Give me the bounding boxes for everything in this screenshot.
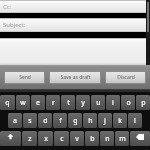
staticText: Discard [117,74,135,81]
button[interactable]: d [38,113,52,128]
staticText: z [28,134,32,144]
button[interactable]: r [46,95,60,110]
staticText: c [60,134,64,144]
staticText: a [13,116,17,126]
button[interactable]: Subject: [0,18,150,32]
button[interactable] [0,38,150,65]
staticText: p [141,98,146,108]
button[interactable]: a [8,113,22,128]
button[interactable]: f [53,113,67,128]
button[interactable]: c [54,131,69,146]
button[interactable]: Backspace [130,131,150,146]
staticText: i [112,98,114,108]
staticText: Cc: [3,3,12,11]
button[interactable]: w [16,95,30,110]
button[interactable]: k [113,113,127,128]
button[interactable]: q [0,95,15,110]
button[interactable]: g [68,113,82,128]
staticText: m [119,134,126,144]
staticText: x [44,134,48,144]
button[interactable]: h [83,113,97,128]
staticText: f [59,116,62,126]
button[interactable]: z [22,131,37,146]
staticText: k [118,116,122,126]
button[interactable]: l [128,113,142,128]
button[interactable]: u [91,95,105,110]
button[interactable]: Send [5,72,44,83]
staticText: w [20,98,26,108]
staticText: q [5,98,10,108]
staticText: o [126,98,131,108]
staticText: s [28,116,32,126]
button[interactable]: s [23,113,37,128]
staticText: b [90,134,95,144]
button[interactable]: o [121,95,135,110]
staticText: y [81,98,85,108]
button[interactable]: e [31,95,45,110]
button[interactable]: x [38,131,53,146]
staticText: n [105,134,110,144]
staticText: Send [19,74,31,81]
button[interactable]: i [106,95,120,110]
staticText: Subject: [3,21,26,29]
button[interactable]: j [98,113,112,128]
staticText: j [104,116,106,126]
staticText: l [134,116,136,126]
staticText: g [73,116,78,126]
staticText: Save as draft [60,74,91,81]
button[interactable]: v [70,131,84,146]
staticText: e [36,98,40,108]
staticText: u [96,98,101,108]
staticText: v [75,134,79,144]
button[interactable]: t [61,95,75,110]
button[interactable]: Save as draft [50,72,100,83]
staticText: d [43,116,48,126]
staticText: h [88,116,93,126]
button[interactable]: n [100,131,114,146]
button[interactable]: Cc: [0,0,150,13]
button[interactable]: p [136,95,150,110]
button[interactable]: Shift [0,131,21,146]
staticText: t [67,98,70,108]
button[interactable]: Discard [106,72,145,83]
button[interactable]: m [115,131,129,146]
button[interactable]: y [76,95,90,110]
button[interactable]: b [85,131,99,146]
staticText: r [52,98,55,108]
